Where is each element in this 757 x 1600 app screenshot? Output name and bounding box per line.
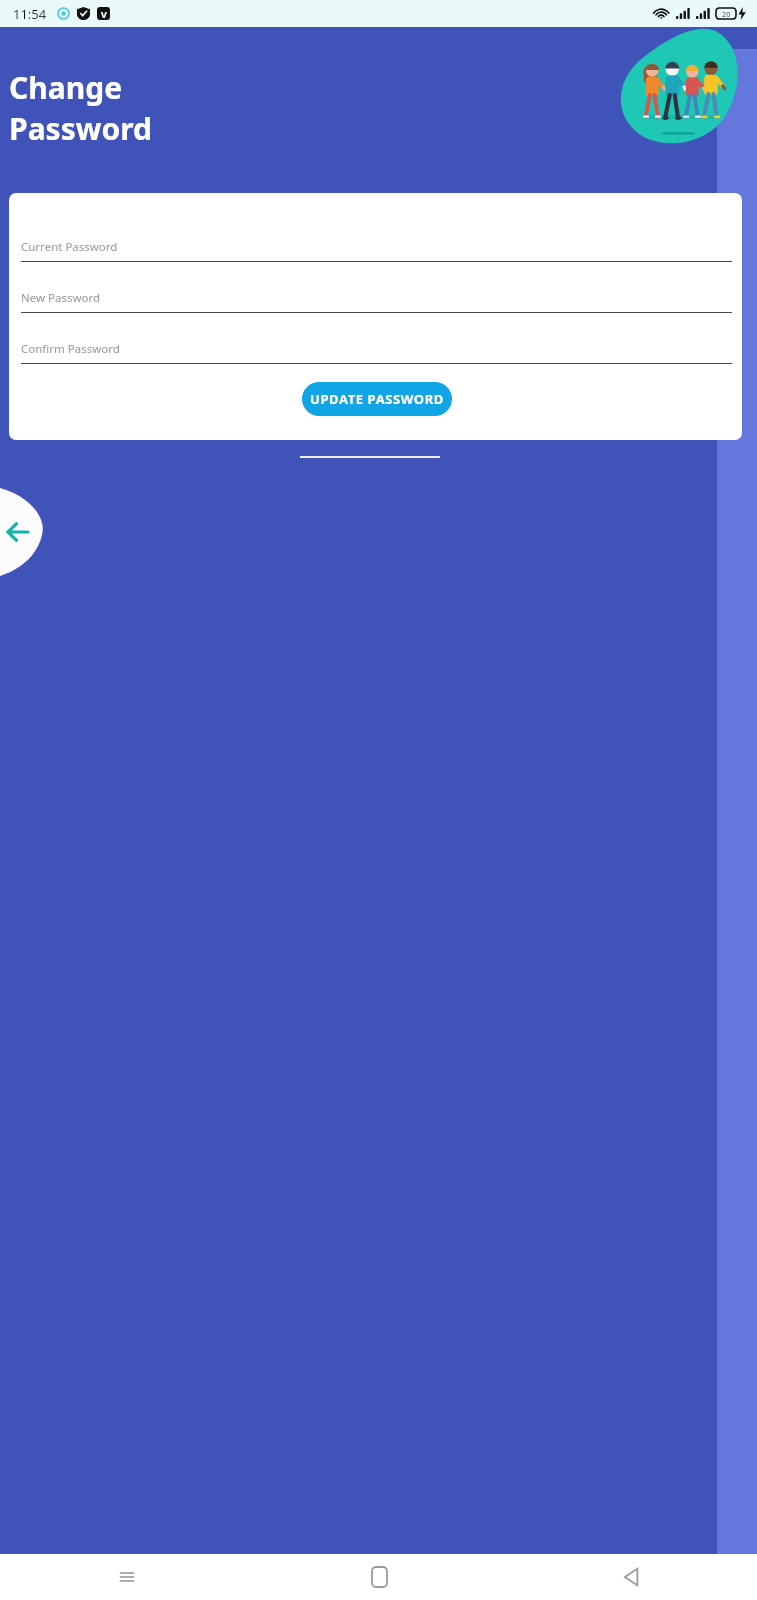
staticText: Password (9, 108, 152, 149)
staticText: Confirm Password (21, 341, 120, 357)
staticText: New Password (21, 290, 101, 306)
staticText: Change (9, 67, 123, 108)
button[interactable]: UPDATE PASSWORD (302, 382, 452, 416)
staticText: 20 (722, 9, 731, 19)
staticText: V (101, 8, 107, 20)
staticText: UPDATE PASSWORD (310, 390, 444, 408)
button[interactable]: Current Password (21, 239, 732, 262)
staticText: 11:54 (13, 5, 47, 23)
button[interactable]: Back (505, 1554, 757, 1600)
button[interactable]: Home (253, 1554, 505, 1600)
button[interactable]: New Password (21, 290, 732, 313)
button[interactable]: Confirm Password (21, 341, 732, 364)
staticText: Current Password (21, 239, 118, 255)
button[interactable]: Back (0, 488, 43, 576)
button[interactable]: Recents (0, 1554, 253, 1600)
